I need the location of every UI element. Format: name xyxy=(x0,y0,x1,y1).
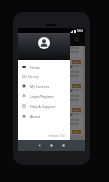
button[interactable]: Introduction to Computer Science Fundame… xyxy=(19,46,83,65)
staticText: My Library xyxy=(22,74,39,79)
staticText: VIEW xyxy=(74,61,80,64)
button[interactable]: VIEW xyxy=(72,60,81,64)
button[interactable]: My Courses xyxy=(18,81,70,91)
button[interactable]: Home xyxy=(48,142,55,149)
staticText: Help & Support xyxy=(30,104,56,109)
button[interactable]: Search xyxy=(74,37,80,43)
staticText: About xyxy=(30,114,40,119)
staticText: VIEW xyxy=(74,109,80,112)
button[interactable]: Recent apps xyxy=(60,142,67,149)
staticText: Introduction to Computer Science Fundame… xyxy=(21,112,85,117)
button[interactable]: Introduction to Computer Science Fundame… xyxy=(19,67,83,89)
button[interactable]: Home xyxy=(18,62,70,72)
button[interactable]: About xyxy=(18,111,70,121)
button[interactable]: Help & Support xyxy=(18,101,70,111)
staticText: Lorem ipsum dolor sit amet consectetur e… xyxy=(21,94,80,98)
staticText: VIEW xyxy=(74,85,80,88)
staticText: do eiusmod tempor incididunt ut labore d… xyxy=(21,50,79,54)
staticText: Version 1.0.0 xyxy=(18,134,65,138)
button[interactable]: Login/Register xyxy=(18,91,70,101)
staticText: Login/Register xyxy=(30,94,55,99)
button[interactable]: Introduction to Computer Science Fundame… xyxy=(19,115,83,135)
staticText: 9:04 xyxy=(77,29,83,33)
button[interactable]: Back xyxy=(36,142,43,149)
staticText: do eiusmod tempor incididunt ut labore d… xyxy=(21,98,79,102)
staticText: Introduction to Computer Science Fundame… xyxy=(21,64,85,69)
staticText: VIEW xyxy=(74,131,80,134)
staticText: Introduction to Computer Science Fundame… xyxy=(21,88,85,93)
staticText: Lorem ipsum dolor sit amet consectetur e… xyxy=(21,46,80,50)
button[interactable]: VIEW xyxy=(72,84,81,88)
button[interactable]: Introduction to Computer Science Fundame… xyxy=(19,91,83,113)
staticText: do eiusmod tempor incididunt ut labore d… xyxy=(21,74,79,78)
staticText: Home xyxy=(30,65,40,70)
staticText: Lorem ipsum dolor sit amet consectetur e… xyxy=(21,118,80,122)
staticText: Lorem ipsum dolor sit amet consectetur e… xyxy=(21,70,80,74)
staticText: do eiusmod tempor incididunt ut labore d… xyxy=(21,122,79,126)
button[interactable]: VIEW xyxy=(72,108,81,112)
button[interactable]: VIEW xyxy=(72,130,81,134)
staticText: My Courses xyxy=(30,84,50,89)
